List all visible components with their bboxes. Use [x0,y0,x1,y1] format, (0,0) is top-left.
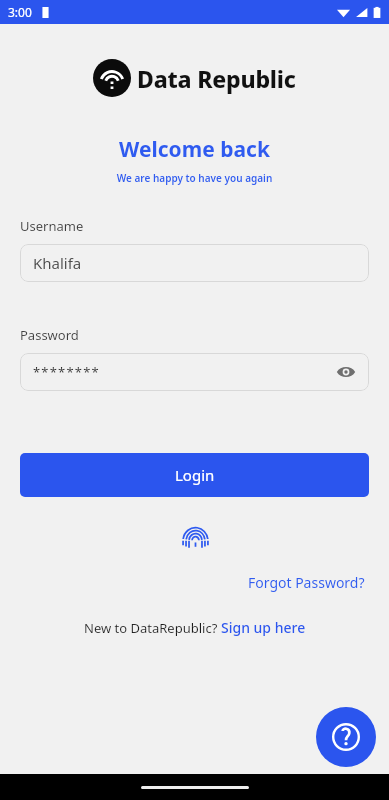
staticText: Username [20,217,84,235]
staticText: Forgot Password? [248,573,365,592]
staticText: Welcome back [0,135,389,164]
button[interactable]: Login [20,453,369,497]
button[interactable]: ******** [20,353,369,391]
staticText: Data Republic [137,63,296,94]
button[interactable]: Login with fingerprint [175,519,215,559]
button[interactable]: Show password [333,359,359,385]
button[interactable]: Help [316,707,376,767]
staticText: We are happy to have you again [0,171,389,185]
staticText: Khalifa [33,253,82,273]
staticText: Password [20,326,79,344]
button[interactable]: Sign up here [221,618,306,637]
button[interactable]: Forgot Password? [244,569,369,596]
staticText: Login [175,465,215,485]
button[interactable]: Khalifa [20,244,369,282]
staticText: 3:00 [8,4,32,20]
staticText: Sign up here [221,618,306,637]
staticText: New to DataRepublic? [84,619,221,637]
staticText: ******** [33,363,100,381]
